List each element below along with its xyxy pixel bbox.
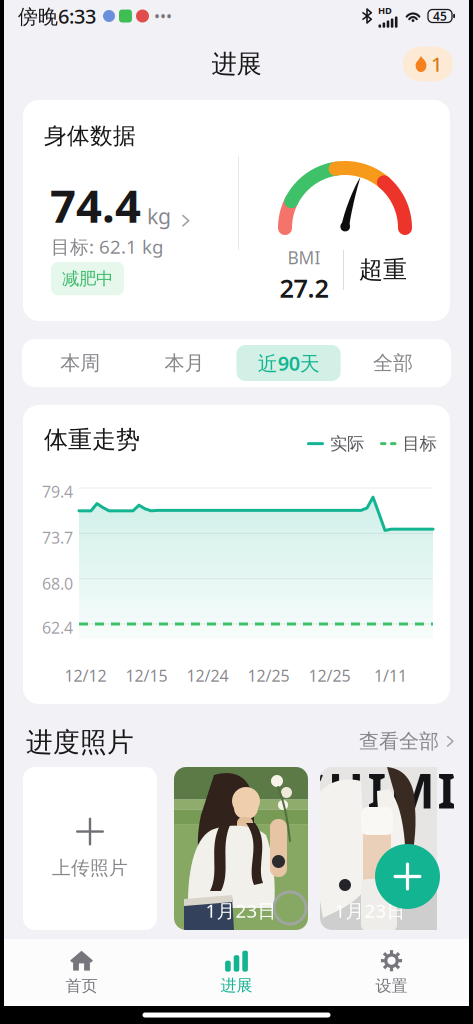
staticText: 进展: [211, 48, 261, 79]
staticText: 首页: [65, 976, 97, 996]
staticText: 12/24: [186, 665, 228, 686]
staticText: 79.4: [42, 481, 73, 502]
button[interactable]: 全部: [341, 345, 445, 381]
staticText: 目标: [402, 433, 436, 454]
staticText: H: [327, 758, 364, 822]
button[interactable]: Streak: [403, 47, 453, 81]
staticText: 进度照片: [26, 726, 134, 759]
button[interactable]: 本周: [28, 345, 132, 381]
staticText: 本周: [60, 351, 100, 375]
button[interactable]: 74.4: [50, 175, 192, 235]
staticText: 12/15: [125, 665, 167, 686]
staticText: 45: [433, 8, 447, 24]
staticText: 1月23日: [334, 898, 405, 923]
button[interactable]: 近90天: [236, 345, 341, 381]
staticText: kg: [147, 202, 171, 230]
button[interactable]: 查看全部: [359, 729, 456, 754]
staticText: 体重走势: [44, 425, 140, 454]
staticText: 62.4: [42, 617, 73, 638]
button[interactable]: 设置: [314, 939, 469, 1005]
staticText: 查看全部: [359, 729, 439, 754]
staticText: C: [293, 758, 324, 822]
staticText: 全部: [373, 351, 413, 375]
staticText: 68.0: [42, 573, 73, 594]
staticText: 本月: [164, 351, 204, 375]
staticText: 近90天: [258, 350, 320, 376]
staticText: BMI: [287, 246, 320, 269]
staticText: I: [437, 758, 456, 822]
button[interactable]: 首页: [4, 939, 159, 1005]
staticText: 目标: 62.1 kg: [51, 234, 163, 259]
staticText: 27.2: [279, 271, 328, 305]
staticText: 超重: [359, 255, 407, 284]
staticText: M: [389, 758, 434, 822]
staticText: 12/25: [247, 665, 289, 686]
staticText: 12/12: [64, 665, 106, 686]
button[interactable]: 本月: [132, 345, 236, 381]
staticText: 上传照片: [52, 856, 128, 879]
button[interactable]: Progress photo January 23: [174, 767, 308, 930]
staticText: 73.7: [42, 527, 73, 548]
button[interactable]: 上传照片: [23, 767, 157, 930]
button[interactable]: Add entry: [375, 844, 440, 909]
staticText: 1/11: [374, 665, 407, 686]
staticText: 1: [431, 51, 442, 77]
staticText: 傍晚6:33: [18, 3, 96, 29]
staticText: 12/25: [308, 665, 350, 686]
staticText: 设置: [375, 976, 407, 996]
staticText: 减肥中: [62, 268, 113, 289]
staticText: 身体数据: [44, 122, 136, 150]
button[interactable]: 进展: [159, 939, 314, 1005]
staticText: 74.4: [50, 175, 141, 235]
staticText: 1月23日: [205, 898, 276, 923]
staticText: 实际: [330, 433, 364, 454]
button[interactable]: Progress photo January 23: [320, 767, 454, 930]
staticText: 进展: [220, 976, 252, 995]
staticText: •••: [154, 5, 172, 27]
staticText: I: [367, 758, 386, 822]
staticText: HD: [378, 4, 392, 17]
